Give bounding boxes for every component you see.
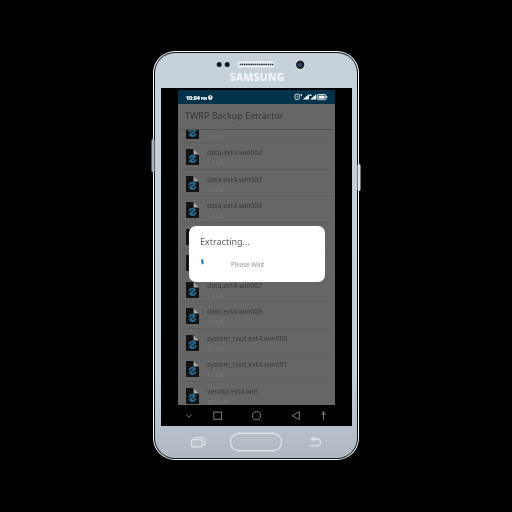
button[interactable]: data.ext4.win004: [178, 196, 335, 223]
button[interactable]: data.ext4.win001: [178, 130, 335, 144]
button[interactable]: data.ext4.win002: [178, 143, 335, 170]
button[interactable]: data.ext4.win003: [178, 170, 335, 197]
staticText: data.ext4.win003: [207, 175, 263, 184]
staticText: 1.1 GB: [207, 159, 223, 166]
staticText: 2.2 GB: [207, 133, 223, 140]
staticText: 1.5 GB: [207, 292, 223, 299]
staticText: 1.5 GB: [207, 212, 223, 219]
staticText: data.ext4.win008: [207, 307, 263, 316]
staticText: system_root.ext4.win001: [207, 360, 288, 369]
staticText: data.ext4.win007: [207, 281, 263, 290]
button[interactable]: Hide keyboard: [178, 405, 210, 426]
button[interactable]: system_root.ext4.win000: [178, 329, 335, 356]
button[interactable]: Recents: [210, 405, 242, 426]
staticText: 1.5 GB: [207, 186, 223, 193]
staticText: 1.3 GB: [207, 318, 223, 325]
staticText: 10:04: [186, 94, 200, 101]
button[interactable]: system_root.ext4.win001: [178, 355, 335, 382]
staticText: vendor.ext4.win: [207, 387, 258, 396]
staticText: data.ext4.win006: [207, 254, 263, 263]
staticText: TWRP Backup Extractor: [185, 109, 284, 121]
staticText: 387.9 MB: [207, 398, 230, 405]
staticText: system_root.ext4.win000: [207, 334, 288, 343]
staticText: 1.5 GB: [207, 345, 223, 352]
staticText: data.ext4.win002: [207, 148, 263, 157]
button[interactable]: data.ext4.win007: [178, 276, 335, 303]
button[interactable]: TWRP Backup Extractor: [178, 104, 335, 129]
button[interactable]: data.ext4.win005: [178, 223, 335, 250]
staticText: SAMSUNG: [230, 70, 285, 84]
staticText: PM: [201, 96, 207, 101]
staticText: Please Wait: [231, 260, 265, 268]
button[interactable]: vendor.ext4.win: [178, 382, 335, 405]
button[interactable]: Pin: [304, 405, 335, 426]
button[interactable]: data.ext4.win008: [178, 302, 335, 329]
staticText: Extracting...: [200, 235, 250, 247]
staticText: data.ext4.win004: [207, 201, 263, 210]
button[interactable]: data.ext4.win006: [178, 249, 335, 276]
staticText: 1.5 GB: [207, 239, 223, 246]
button[interactable]: Back: [273, 405, 304, 426]
staticText: 1.1 GB: [207, 371, 223, 378]
button[interactable]: Home: [242, 405, 273, 426]
